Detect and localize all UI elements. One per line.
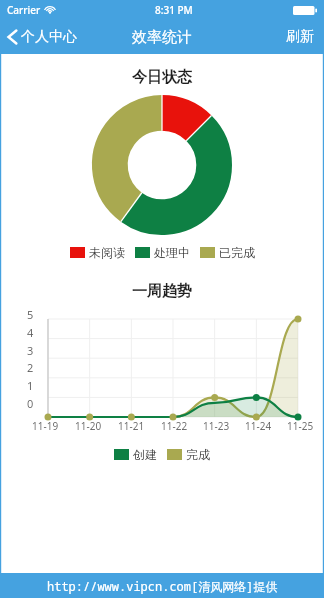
staticText: 11-24: [245, 419, 272, 433]
staticText: 完成: [186, 447, 210, 462]
staticText: 8:31 PM: [155, 3, 193, 17]
staticText: 5: [27, 307, 34, 322]
button[interactable]: Back: [0, 20, 87, 54]
staticText: 未阅读: [89, 245, 125, 260]
staticText: 今日状态: [0, 68, 324, 87]
button[interactable]: 完成: [167, 445, 210, 464]
button[interactable]: 创建: [114, 445, 157, 464]
staticText: 11-19: [32, 419, 59, 433]
staticText: 创建: [133, 447, 157, 462]
staticText: 1: [27, 378, 34, 393]
other: Back: [7, 28, 18, 46]
button[interactable]: 刷新: [276, 20, 324, 54]
staticText: 4: [27, 325, 34, 340]
staticText: 2: [27, 360, 34, 375]
staticText: 11-25: [287, 419, 314, 433]
staticText: 11-21: [118, 419, 145, 433]
staticText: 已完成: [219, 245, 255, 260]
staticText: 11-23: [203, 419, 230, 433]
staticText: 11-20: [75, 419, 102, 433]
staticText: 效率统计: [132, 28, 192, 47]
staticText: 个人中心: [21, 28, 77, 46]
staticText: 处理中: [154, 245, 190, 260]
staticText: 3: [27, 343, 34, 358]
staticText: http://www.vipcn.com[清风网络]提供: [47, 578, 278, 594]
staticText: 一周趋势: [0, 282, 324, 301]
button[interactable]: 已完成: [200, 243, 255, 262]
staticText: 刷新: [286, 28, 314, 46]
button[interactable]: 处理中: [135, 243, 190, 262]
staticText: Carrier: [7, 3, 41, 17]
staticText: 0: [27, 396, 34, 411]
staticText: 11-22: [161, 419, 188, 433]
button[interactable]: 未阅读: [70, 243, 125, 262]
